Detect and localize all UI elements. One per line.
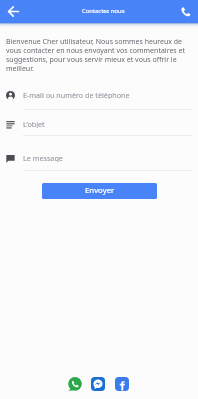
button[interactable]: Messenger bbox=[91, 377, 105, 391]
staticText: Contactez nous bbox=[82, 7, 125, 15]
button[interactable]: Facebook bbox=[115, 377, 129, 391]
staticText: Envoyer bbox=[85, 185, 115, 196]
button[interactable]: Back bbox=[8, 6, 19, 17]
button[interactable]: L'objet bbox=[0, 120, 198, 129]
staticText: Bienvenue Cher utilisateur, Nous sommes … bbox=[6, 37, 190, 73]
staticText: L'objet bbox=[23, 119, 45, 128]
button[interactable]: Envoyer bbox=[42, 183, 157, 199]
button[interactable]: Call bbox=[180, 6, 191, 17]
button[interactable]: WhatsApp bbox=[68, 377, 82, 391]
button[interactable]: Le message bbox=[0, 154, 198, 163]
button[interactable]: E-mail ou numéro de téléphone bbox=[0, 91, 198, 100]
staticText: E-mail ou numéro de téléphone bbox=[23, 90, 130, 99]
staticText: Le message bbox=[23, 153, 63, 162]
